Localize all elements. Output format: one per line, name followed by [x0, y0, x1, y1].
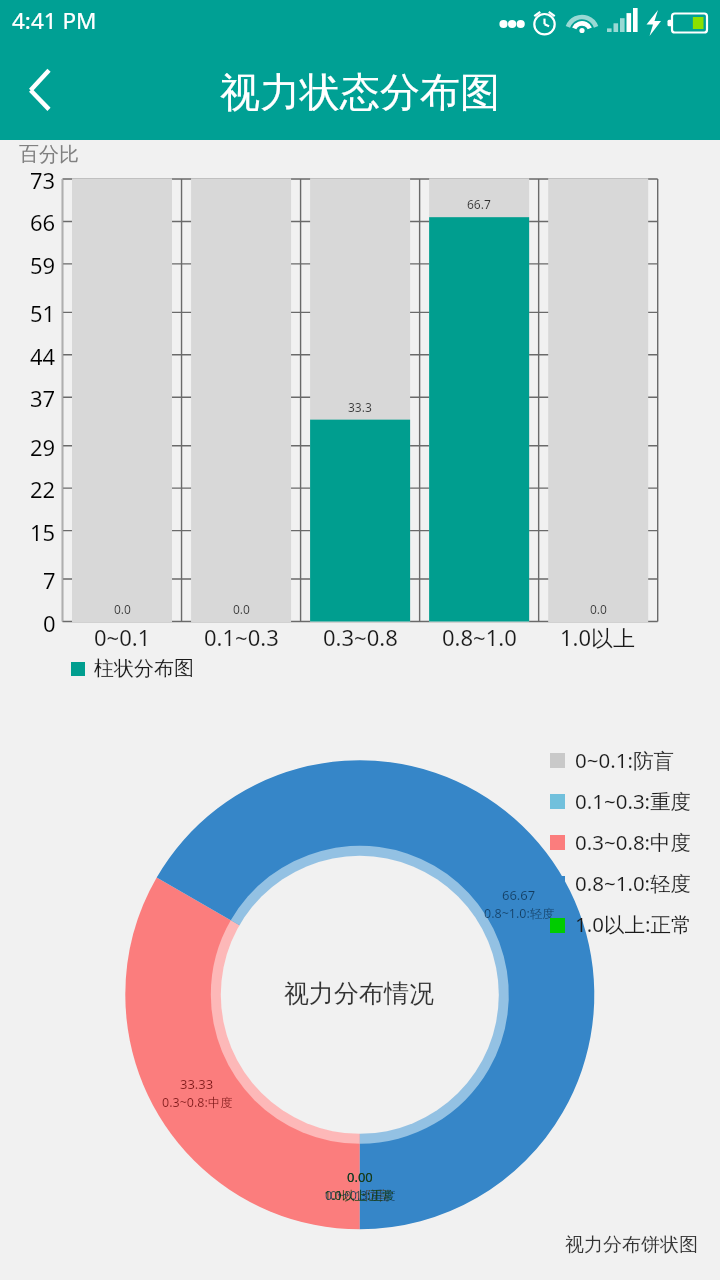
staticText: 0.1~0.3:重度 [325, 1187, 396, 1204]
staticText: 0.1~0.3:重度 [575, 787, 692, 815]
staticText: 0~0.1:防盲 [330, 1187, 391, 1204]
staticText: 0.3~0.8 [323, 622, 398, 652]
staticText: 29 [30, 432, 56, 462]
staticText: 0 [43, 608, 56, 638]
staticText: 0.8~1.0:轻度 [484, 905, 555, 922]
staticText: 22 [30, 474, 56, 504]
staticText: 44 [30, 341, 56, 371]
staticText: 0.0 [114, 601, 131, 617]
staticText: 视力分布饼状图 [565, 1233, 698, 1257]
staticText: 0.00 [347, 1168, 373, 1186]
staticText: 0.8~1.0 [442, 622, 517, 652]
staticText: 0.00 [347, 1168, 373, 1186]
staticText: 37 [30, 383, 56, 413]
staticText: 33.33 [180, 1075, 214, 1093]
staticText: 66.7 [467, 196, 491, 212]
staticText: 73 [30, 165, 56, 195]
staticText: 0~0.1:防盲 [575, 746, 674, 774]
staticText: 59 [30, 250, 56, 280]
staticText: 4:41 PM [12, 5, 97, 36]
staticText: 66 [30, 207, 56, 237]
staticText: 51 [30, 298, 56, 328]
staticText: 1.0以上:正常 [575, 910, 692, 938]
staticText: 视力分布情况 [284, 978, 434, 1009]
staticText: 0.00 [347, 1168, 373, 1186]
staticText: 柱状分布图 [94, 656, 194, 681]
staticText: 0.8~1.0:轻度 [575, 869, 692, 897]
staticText: 0.0 [590, 601, 607, 617]
staticText: 66.67 [502, 886, 536, 904]
staticText: 0.3~0.8:中度 [575, 828, 692, 856]
staticText: 1.0以上 [560, 622, 636, 652]
staticText: 33.3 [348, 399, 372, 415]
staticText: 0.0 [233, 601, 250, 617]
staticText: 15 [30, 517, 56, 547]
button[interactable]: Back [0, 45, 82, 140]
staticText: 0~0.1 [94, 622, 151, 652]
staticText: 0.1~0.3 [204, 622, 279, 652]
staticText: 百分比 [19, 142, 79, 167]
staticText: 0.3~0.8:中度 [162, 1094, 233, 1111]
staticText: 视力状态分布图 [0, 67, 720, 140]
staticText: 1.0以上:正常 [324, 1187, 396, 1204]
staticText: 7 [43, 565, 56, 595]
